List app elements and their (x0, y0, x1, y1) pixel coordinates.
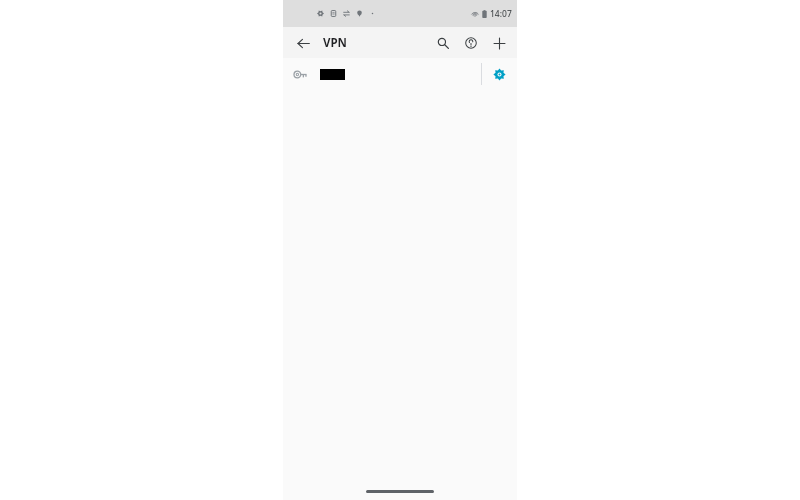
button[interactable]: VPN settings (283, 58, 517, 90)
staticText: 14:07 (490, 8, 512, 20)
button[interactable]: Back (291, 31, 315, 55)
button[interactable]: Add VPN (487, 31, 511, 55)
button[interactable]: Help (459, 31, 483, 55)
button[interactable]: Search (431, 31, 455, 55)
staticText: VPN (323, 35, 347, 51)
button[interactable]: VPN settings (489, 64, 509, 84)
